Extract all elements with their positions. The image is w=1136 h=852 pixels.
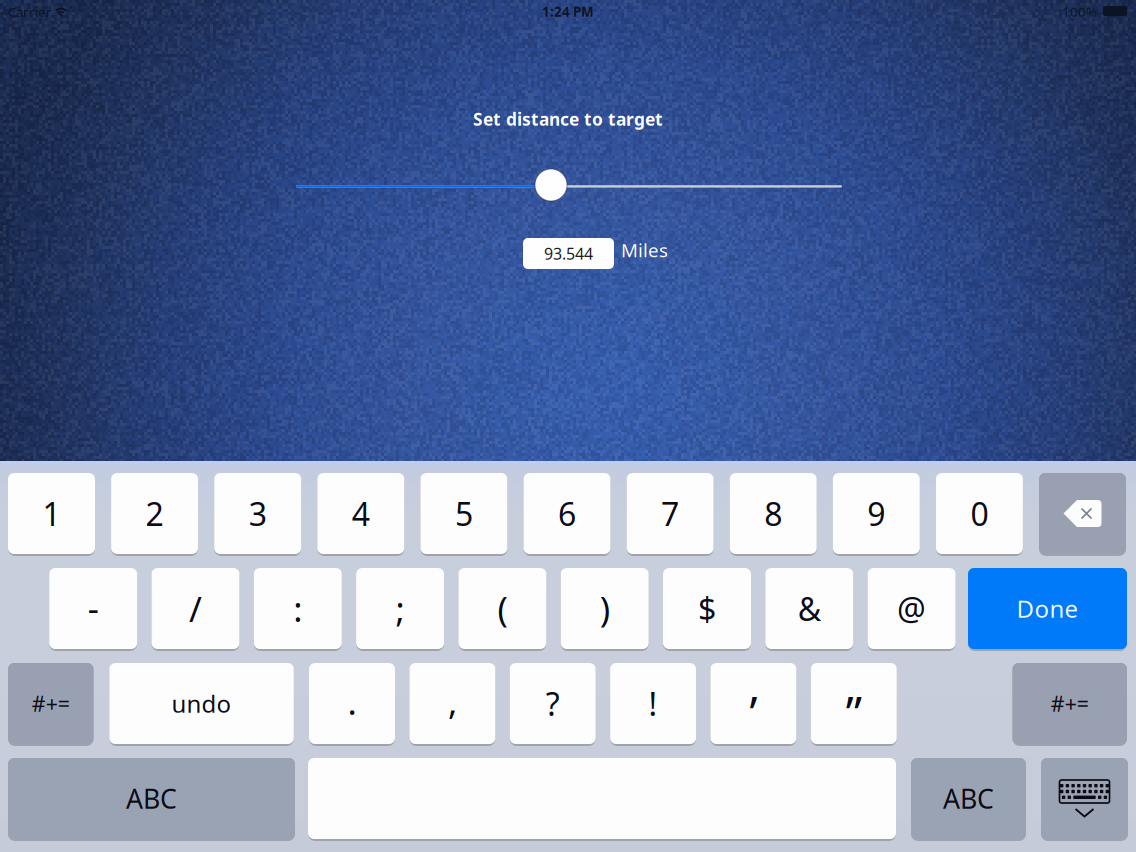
button[interactable]: ABC	[8, 758, 295, 839]
staticText: ’	[749, 682, 757, 743]
staticText: Done	[1016, 593, 1078, 624]
staticText: ;	[396, 585, 405, 631]
button[interactable]: :	[254, 568, 342, 649]
button[interactable]: 5	[420, 473, 507, 554]
button[interactable]: ;	[356, 568, 444, 649]
staticText: )	[600, 585, 610, 631]
staticText: !	[649, 682, 658, 725]
staticText: Carrier	[8, 3, 52, 20]
button[interactable]: .	[309, 663, 395, 744]
staticText: 5	[455, 492, 473, 535]
staticText: @	[897, 587, 926, 630]
button[interactable]: 4	[317, 473, 404, 554]
button[interactable]: ?	[510, 663, 596, 744]
staticText: 9	[867, 492, 885, 535]
button[interactable]: ABC	[911, 758, 1026, 839]
staticText: ”	[846, 682, 862, 743]
button[interactable]: 6	[523, 473, 610, 554]
staticText: 2	[146, 492, 164, 535]
staticText: 3	[249, 492, 267, 535]
button[interactable]: $	[663, 568, 751, 649]
button[interactable]: /	[151, 568, 239, 649]
button[interactable]: 2	[111, 473, 198, 554]
button[interactable]: 7	[627, 473, 714, 554]
button[interactable]: 3	[214, 473, 301, 554]
staticText: 6	[558, 492, 576, 535]
button[interactable]: #+=	[1012, 663, 1127, 744]
staticText: Miles	[621, 238, 668, 262]
button[interactable]: #+=	[8, 663, 93, 744]
staticText: /	[189, 585, 202, 631]
staticText: 7	[661, 492, 679, 535]
button[interactable]: 0	[936, 473, 1023, 554]
staticText: 8	[764, 492, 782, 535]
staticText: Set distance to target	[473, 107, 663, 130]
staticText: ?	[546, 682, 560, 725]
button[interactable]: @	[868, 568, 956, 649]
staticText: (	[497, 585, 507, 631]
staticText: .	[347, 678, 356, 724]
button[interactable]: Done	[968, 568, 1127, 649]
staticText: undo	[172, 688, 232, 719]
button[interactable]: -	[49, 568, 137, 649]
button[interactable]: ,	[409, 663, 495, 744]
button[interactable]: (	[458, 568, 546, 649]
staticText: 0	[970, 492, 988, 535]
staticText: #+=	[32, 689, 70, 718]
staticText: 1	[42, 492, 60, 535]
staticText: -	[88, 584, 99, 630]
staticText: 100%	[1062, 3, 1097, 20]
button[interactable]: 8	[730, 473, 817, 554]
button[interactable]: !	[610, 663, 696, 744]
staticText: 93.544	[544, 243, 593, 264]
staticText: 4	[352, 492, 370, 535]
button[interactable]: ’	[710, 663, 796, 744]
button[interactable]: )	[561, 568, 649, 649]
staticText: ABC	[943, 781, 994, 816]
staticText: 1:24 PM	[542, 3, 594, 20]
staticText: &	[798, 587, 821, 630]
staticText: :	[293, 585, 302, 631]
button[interactable]: 9	[833, 473, 920, 554]
button[interactable]: Hide keyboard	[1041, 758, 1128, 839]
button[interactable]: ”	[811, 663, 897, 744]
button[interactable]: &	[765, 568, 853, 649]
staticText: #+=	[1051, 689, 1089, 718]
staticText: $	[698, 587, 716, 630]
staticText: ABC	[126, 781, 177, 816]
staticText: ,	[448, 678, 457, 724]
button[interactable]: undo	[109, 663, 294, 744]
button[interactable]: 1	[8, 473, 95, 554]
button[interactable]: Delete	[1039, 473, 1126, 554]
